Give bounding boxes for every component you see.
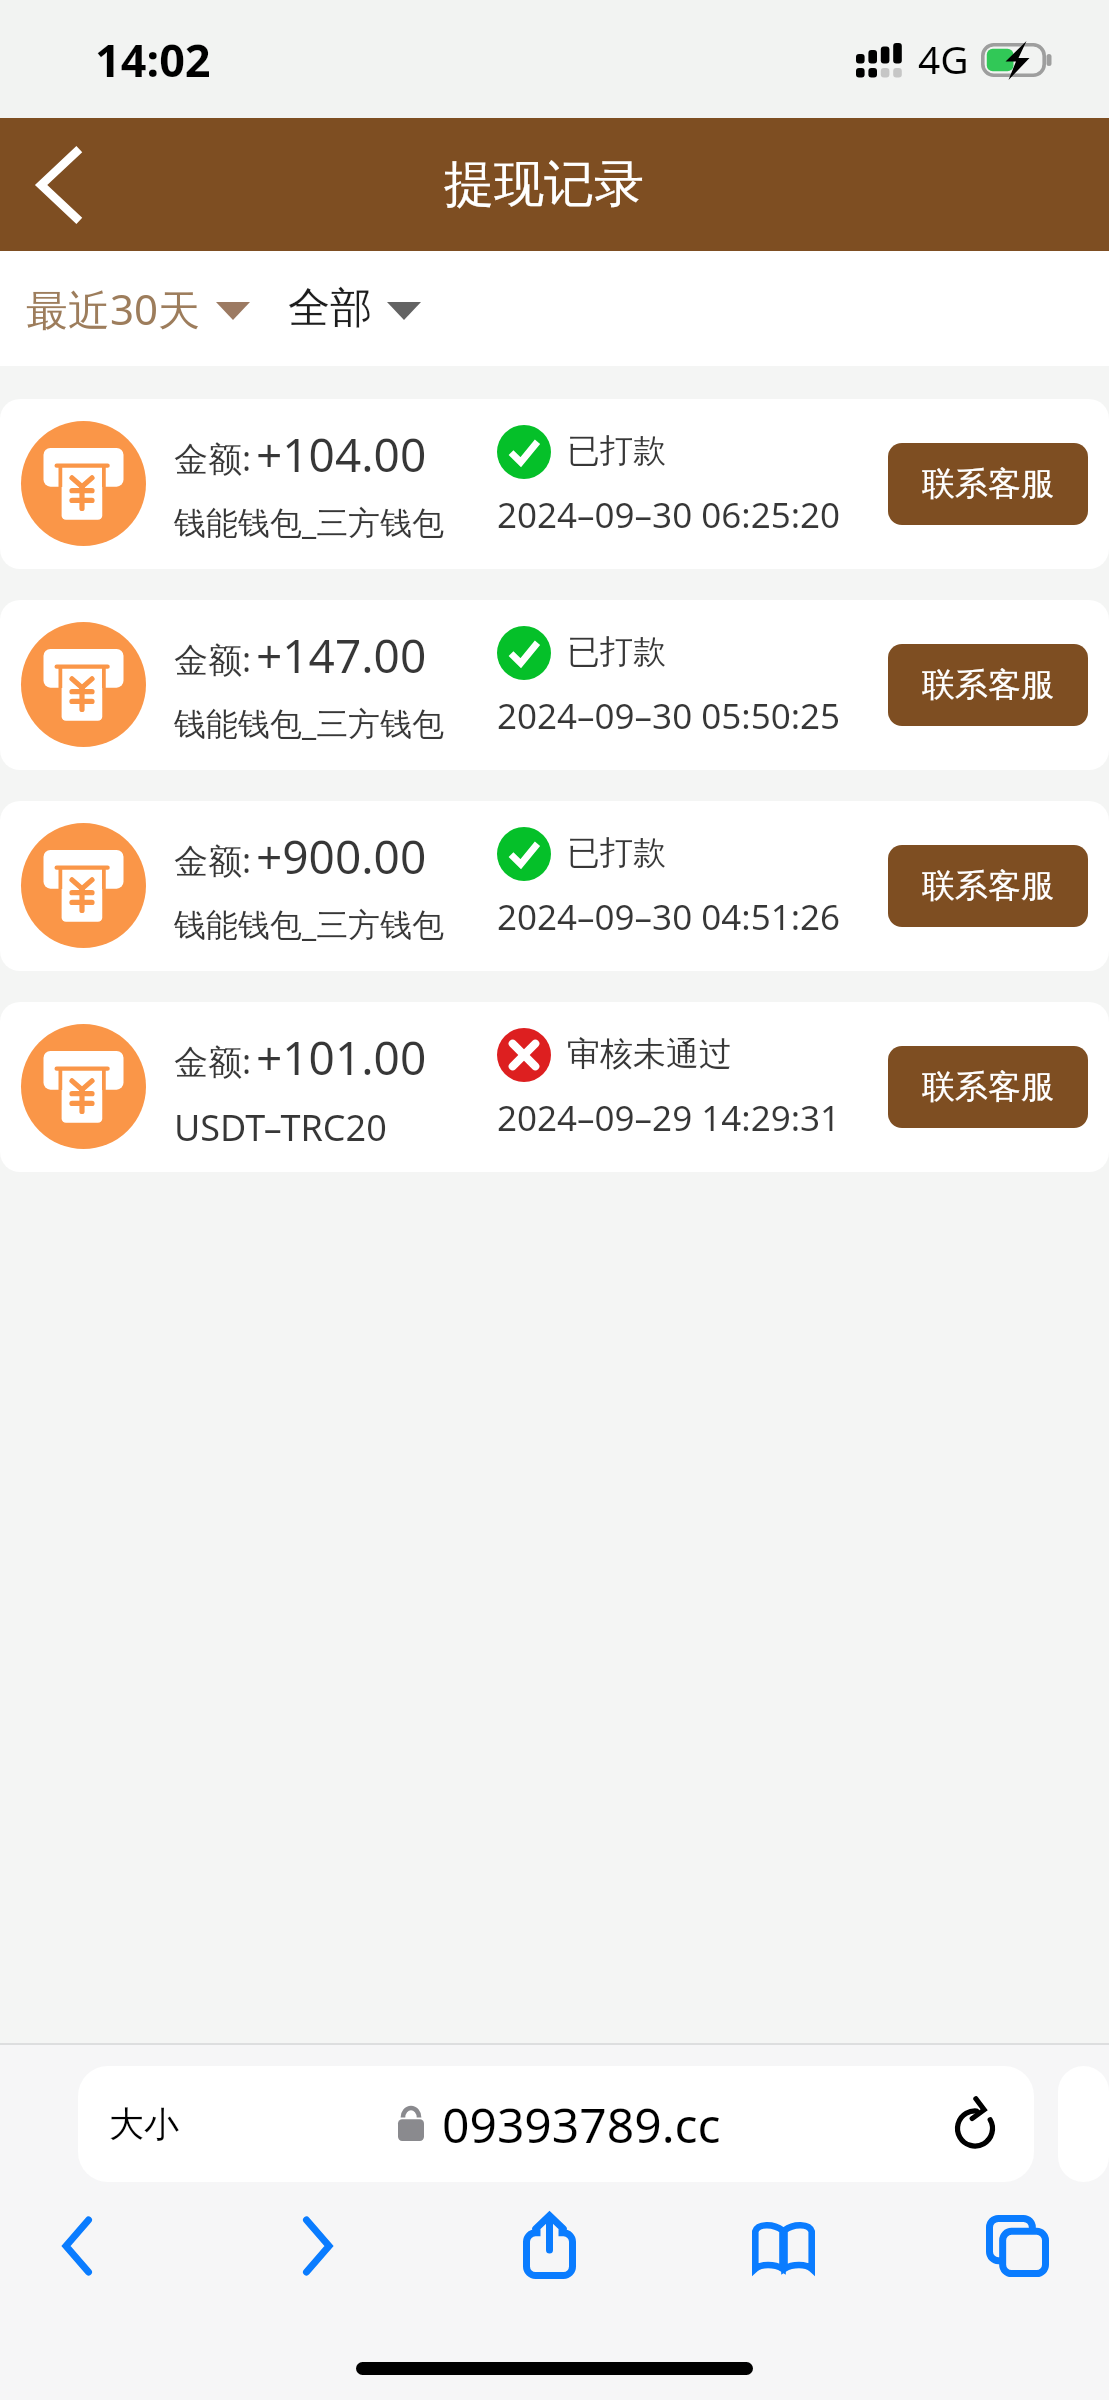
staticText: 4G bbox=[918, 32, 969, 85]
staticText: 联系客服 bbox=[922, 1066, 1054, 1108]
other: Battery charging bbox=[981, 43, 1053, 79]
staticText: 09393789.cc bbox=[442, 2092, 721, 2157]
staticText: 审核未通过 bbox=[567, 1033, 732, 1075]
staticText: 联系客服 bbox=[922, 463, 1054, 505]
staticText: 金额: bbox=[174, 636, 252, 682]
staticText: 联系客服 bbox=[922, 865, 1054, 907]
button[interactable]: 金额: bbox=[0, 399, 1109, 569]
staticText: 2024–09–30 06:25:20 bbox=[497, 491, 841, 539]
other: Reload bbox=[952, 2095, 998, 2149]
staticText: 金额: bbox=[174, 837, 252, 883]
staticText: 14:02 bbox=[95, 29, 211, 90]
button[interactable]: 金额: bbox=[0, 600, 1109, 770]
button[interactable]: Forward bbox=[261, 2191, 373, 2301]
button[interactable]: 全部 bbox=[288, 251, 421, 366]
button[interactable]: Tabs bbox=[961, 2191, 1073, 2301]
staticText: 大小 bbox=[109, 2102, 179, 2146]
button[interactable]: 联系客服 bbox=[888, 644, 1088, 726]
staticText: 联系客服 bbox=[922, 664, 1054, 706]
staticText: 2024–09–30 04:51:26 bbox=[497, 893, 841, 941]
button[interactable]: 联系客服 bbox=[888, 1046, 1088, 1128]
button[interactable]: 最近30天 bbox=[26, 251, 1109, 366]
button[interactable]: 联系客服 bbox=[888, 845, 1088, 927]
staticText: 已打款 bbox=[567, 832, 666, 874]
button[interactable]: 大小 bbox=[78, 2066, 1034, 2182]
other: Signal strength bbox=[856, 43, 904, 79]
button[interactable]: Bookmarks bbox=[727, 2191, 839, 2301]
staticText: 钱能钱包_三方钱包 bbox=[174, 902, 445, 946]
staticText: 最近30天 bbox=[26, 280, 201, 337]
staticText: +147.00 bbox=[256, 624, 427, 687]
staticText: USDT–TRC20 bbox=[174, 1103, 387, 1152]
staticText: 金额: bbox=[174, 1038, 252, 1084]
staticText: 钱能钱包_三方钱包 bbox=[174, 701, 445, 745]
button[interactable]: Back bbox=[0, 118, 120, 251]
button[interactable]: 联系客服 bbox=[888, 443, 1088, 525]
staticText: 全部 bbox=[288, 282, 372, 335]
staticText: +900.00 bbox=[256, 825, 427, 888]
staticText: +104.00 bbox=[256, 423, 427, 486]
button[interactable]: Back bbox=[22, 2191, 134, 2301]
staticText: 金额: bbox=[174, 435, 252, 481]
staticText: +101.00 bbox=[256, 1026, 427, 1089]
button[interactable]: 金额: bbox=[0, 801, 1109, 971]
button[interactable]: 金额: bbox=[0, 1002, 1109, 1172]
staticText: 提现记录 bbox=[444, 153, 644, 216]
staticText: 2024–09–29 14:29:31 bbox=[497, 1094, 841, 1142]
button[interactable]: Share bbox=[493, 2191, 605, 2301]
staticText: 钱能钱包_三方钱包 bbox=[174, 500, 445, 544]
staticText: 已打款 bbox=[567, 430, 666, 472]
staticText: 已打款 bbox=[567, 631, 666, 673]
staticText: 2024–09–30 05:50:25 bbox=[497, 692, 841, 740]
